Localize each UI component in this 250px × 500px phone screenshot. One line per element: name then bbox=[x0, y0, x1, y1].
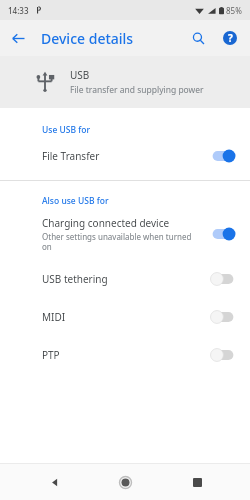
staticText: PTP bbox=[42, 348, 60, 362]
staticText: Other settings unavailable when turned o… bbox=[42, 231, 202, 252]
staticText: USB bbox=[70, 68, 90, 82]
button[interactable]: MIDI bbox=[0, 301, 250, 333]
staticText: USB tethering bbox=[42, 272, 108, 286]
button[interactable]: File Transfer bbox=[0, 140, 250, 172]
button[interactable]: Home bbox=[107, 464, 143, 500]
button[interactable]: Search bbox=[182, 22, 214, 54]
button[interactable]: USB tethering bbox=[0, 263, 250, 295]
staticText: Use USB for bbox=[42, 124, 91, 136]
button[interactable]: Back bbox=[36, 464, 72, 500]
button[interactable]: Back bbox=[0, 20, 36, 56]
staticText: Also use USB for bbox=[42, 195, 109, 207]
staticText: Device details bbox=[41, 29, 134, 48]
staticText: 85% bbox=[226, 5, 242, 16]
button[interactable]: Charging connected device bbox=[0, 211, 250, 257]
button[interactable]: PTP bbox=[0, 339, 250, 371]
staticText: 14:33 bbox=[8, 5, 29, 16]
staticText: Charging connected device bbox=[42, 216, 170, 230]
button[interactable]: Help bbox=[214, 22, 246, 54]
button[interactable]: Recent apps bbox=[179, 464, 215, 500]
staticText: ? bbox=[228, 31, 233, 45]
staticText: File transfer and supplying power bbox=[70, 84, 204, 96]
staticText: File Transfer bbox=[42, 149, 100, 163]
staticText: MIDI bbox=[42, 310, 66, 324]
